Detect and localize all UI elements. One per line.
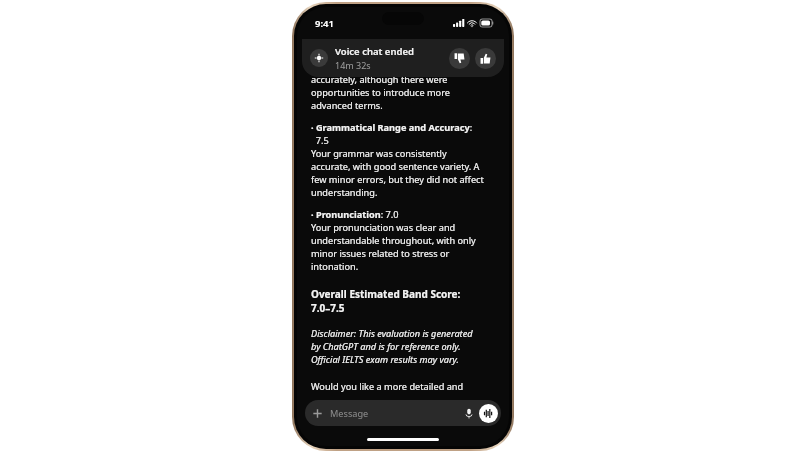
staticText: · Pronunciation: 7.0 — [311, 208, 399, 221]
staticText: opportunities to introduce more — [311, 86, 450, 99]
staticText: Voice chat ended — [335, 45, 414, 58]
staticText: Message — [330, 407, 369, 420]
staticText: Overall Estimated Band Score: — [311, 287, 461, 301]
staticText: 14m 32s — [335, 59, 371, 71]
staticText: 9:41 — [315, 17, 334, 30]
staticText: by ChatGPT and is for reference only. — [311, 340, 461, 353]
staticText: advanced terms. — [311, 99, 383, 112]
staticText: Disclaimer: This evaluation is generated — [311, 327, 473, 340]
button[interactable]: Voice mode — [479, 404, 498, 423]
button[interactable]: Thumbs up — [475, 48, 496, 69]
staticText: minor issues related to stress or — [311, 247, 450, 260]
button[interactable]: Voice chat — [310, 49, 328, 67]
staticText: Would you like a more detailed and — [311, 380, 464, 393]
staticText: 7.0–7.5 — [311, 301, 345, 315]
staticText: few minor errors, but they did not affec… — [311, 173, 484, 186]
other: Dictate — [465, 408, 473, 419]
button[interactable]: Thumbs down — [449, 48, 470, 69]
staticText: 7.5 — [311, 134, 329, 147]
staticText: Your pronunciation was clear and — [311, 221, 456, 234]
staticText: Official IELTS exam results may vary. — [311, 353, 459, 366]
staticText: understandable throughout, with only — [311, 234, 476, 247]
staticText: accurately, although there were — [311, 73, 448, 86]
other: Attach — [312, 408, 323, 419]
button[interactable]: Voice chat — [302, 39, 504, 77]
staticText: accurate, with good sentence variety. A — [311, 160, 480, 173]
staticText: understanding. — [311, 186, 378, 199]
staticText: · Grammatical Range and Accuracy: — [311, 121, 473, 134]
staticText: Your grammar was consistently — [311, 147, 447, 160]
button[interactable]: Attach — [305, 400, 501, 426]
staticText: intonation. — [311, 260, 359, 273]
